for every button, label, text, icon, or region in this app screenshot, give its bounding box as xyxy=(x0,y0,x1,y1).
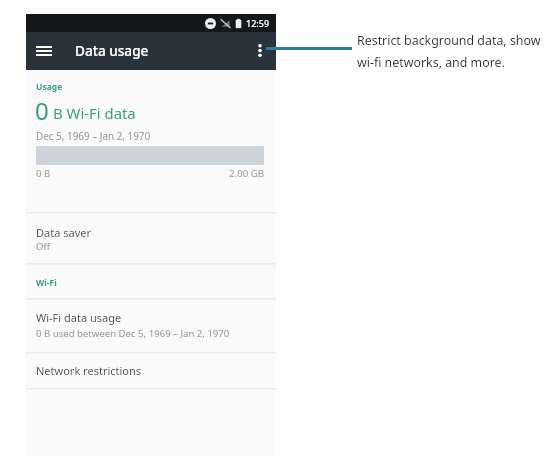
staticText: Off xyxy=(36,240,50,253)
staticText: B Wi-Fi data xyxy=(53,103,136,123)
button[interactable]: More options xyxy=(245,36,275,65)
staticText: 0 B used between Dec 5, 1969 – Jan 2, 19… xyxy=(36,327,230,340)
staticText: Usage xyxy=(36,81,63,93)
button[interactable]: Open navigation drawer xyxy=(26,36,62,65)
staticText: 2.00 GB xyxy=(229,167,265,180)
staticText: Restrict background data, show xyxy=(357,32,541,49)
button[interactable]: Data saver xyxy=(26,213,276,263)
button[interactable]: Network restrictions xyxy=(26,353,276,388)
staticText: Wi-Fi data usage xyxy=(36,310,122,325)
staticText: Network restrictions xyxy=(36,363,142,378)
staticText: 0 xyxy=(35,94,49,127)
staticText: Data usage xyxy=(75,41,149,60)
staticText: 12:59 xyxy=(246,17,270,29)
staticText: wi-fi networks, and more. xyxy=(357,54,505,71)
staticText: Wi-Fi xyxy=(36,277,57,289)
staticText: 0 B xyxy=(36,167,51,180)
button[interactable]: Wi-Fi data usage xyxy=(26,299,276,352)
staticText: Data saver xyxy=(36,225,91,240)
staticText: Dec 5, 1969 – Jan 2, 1970 xyxy=(36,129,151,142)
